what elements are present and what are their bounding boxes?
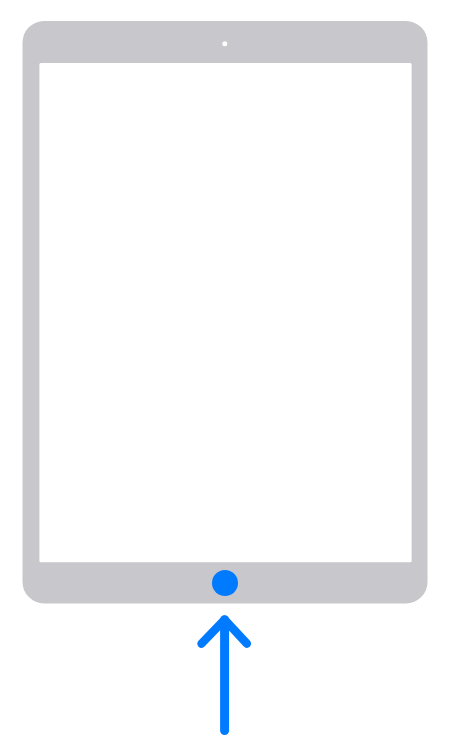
button[interactable]: Home button xyxy=(212,570,238,596)
